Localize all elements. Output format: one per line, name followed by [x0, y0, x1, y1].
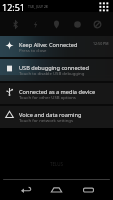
staticText: Press to close [19, 47, 47, 53]
staticText: Touch for other USB options [19, 94, 76, 100]
staticText: 12:51 [2, 1, 26, 13]
button[interactable]: Flashlight [30, 19, 41, 30]
staticText: Touch for network settings [19, 117, 73, 123]
button[interactable]: Location [51, 19, 62, 30]
staticText: Connected as a media device [19, 88, 96, 96]
button[interactable]: Quick settings [99, 2, 108, 11]
staticText: Keep Alive: Connected [19, 41, 78, 49]
staticText: TELUS [50, 161, 64, 167]
staticText: Touch to disable USB debugging [19, 70, 85, 76]
staticText: 12:50 PM [93, 41, 109, 46]
button[interactable]: USB debugging connected [0, 59, 113, 81]
button[interactable]: Keep Alive: Connected [0, 36, 113, 57]
button[interactable]: Voice and data roaming [0, 106, 113, 127]
button[interactable]: Bluetooth [10, 19, 21, 30]
button[interactable]: Connected as a media device [0, 83, 113, 104]
button[interactable]: Home [50, 184, 63, 197]
button[interactable]: Back [19, 184, 32, 197]
staticText: Voice and data roaming [19, 111, 82, 119]
button[interactable]: Mobile data [72, 19, 83, 30]
button[interactable]: Do not disturb [92, 19, 103, 30]
button[interactable]: Recent apps [82, 184, 95, 197]
staticText: TUE, JULY 28 [28, 4, 48, 9]
staticText: USB debugging connected [19, 64, 89, 72]
